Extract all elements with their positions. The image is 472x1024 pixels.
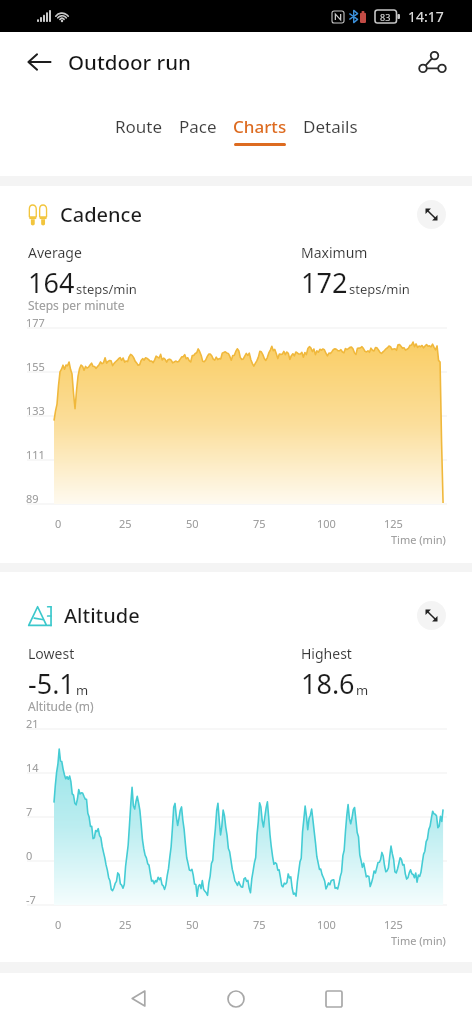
button[interactable]: Share — [410, 40, 454, 84]
staticText: Cadence — [60, 201, 142, 228]
staticText: -5.1 — [28, 665, 75, 702]
staticText: Outdoor run — [68, 48, 191, 76]
staticText: Route — [115, 115, 163, 138]
staticText: 111 — [26, 447, 45, 462]
staticText: Altitude (m) — [28, 698, 94, 714]
staticText: 83 — [380, 11, 391, 23]
staticText: steps/min — [76, 280, 137, 298]
staticText: 89 — [26, 491, 39, 506]
button[interactable]: Route — [107, 115, 171, 146]
staticText: 14 — [26, 760, 39, 775]
staticText: 18.6 — [301, 665, 355, 702]
staticText: Maximum — [301, 243, 368, 262]
staticText: 25 — [119, 516, 132, 531]
staticText: 172 — [301, 264, 348, 301]
staticText: m — [356, 681, 369, 699]
staticText: Highest — [301, 644, 352, 663]
staticText: 164 — [28, 264, 75, 301]
button[interactable]: Back — [17, 40, 61, 84]
staticText: Altitude — [64, 602, 140, 629]
button[interactable]: Home — [208, 973, 264, 1024]
staticText: Average — [28, 243, 82, 262]
staticText: 0 — [26, 848, 33, 863]
staticText: 14:17 — [408, 7, 444, 26]
staticText: 21 — [26, 716, 39, 731]
staticText: 75 — [253, 516, 266, 531]
staticText: 0 — [55, 917, 62, 932]
staticText: Charts — [233, 115, 287, 138]
button[interactable]: Back — [110, 973, 166, 1024]
staticText: m — [76, 681, 89, 699]
staticText: 100 — [317, 917, 336, 932]
staticText: Time (min) — [391, 933, 446, 948]
staticText: 50 — [186, 917, 199, 932]
staticText: 155 — [26, 359, 45, 374]
staticText: 0 — [55, 516, 62, 531]
staticText: 75 — [253, 917, 266, 932]
button[interactable]: Details — [295, 115, 366, 146]
staticText: 50 — [186, 516, 199, 531]
staticText: 125 — [384, 516, 403, 531]
staticText: Time (min) — [391, 532, 446, 547]
staticText: 7 — [26, 804, 33, 819]
button[interactable]: Charts — [225, 115, 295, 146]
staticText: Lowest — [28, 644, 75, 663]
staticText: 177 — [26, 315, 45, 330]
button[interactable]: Recent apps — [306, 973, 362, 1024]
staticText: Pace — [179, 115, 217, 138]
button[interactable]: Pace — [171, 115, 225, 146]
staticText: Details — [303, 115, 358, 138]
button[interactable]: Expand chart — [417, 200, 446, 229]
staticText: -7 — [26, 892, 36, 907]
staticText: 25 — [119, 917, 132, 932]
staticText: 125 — [384, 917, 403, 932]
staticText: 133 — [26, 403, 45, 418]
staticText: steps/min — [349, 280, 410, 298]
button[interactable]: Expand chart — [417, 601, 446, 630]
staticText: Steps per minute — [28, 297, 125, 313]
staticText: 100 — [317, 516, 336, 531]
